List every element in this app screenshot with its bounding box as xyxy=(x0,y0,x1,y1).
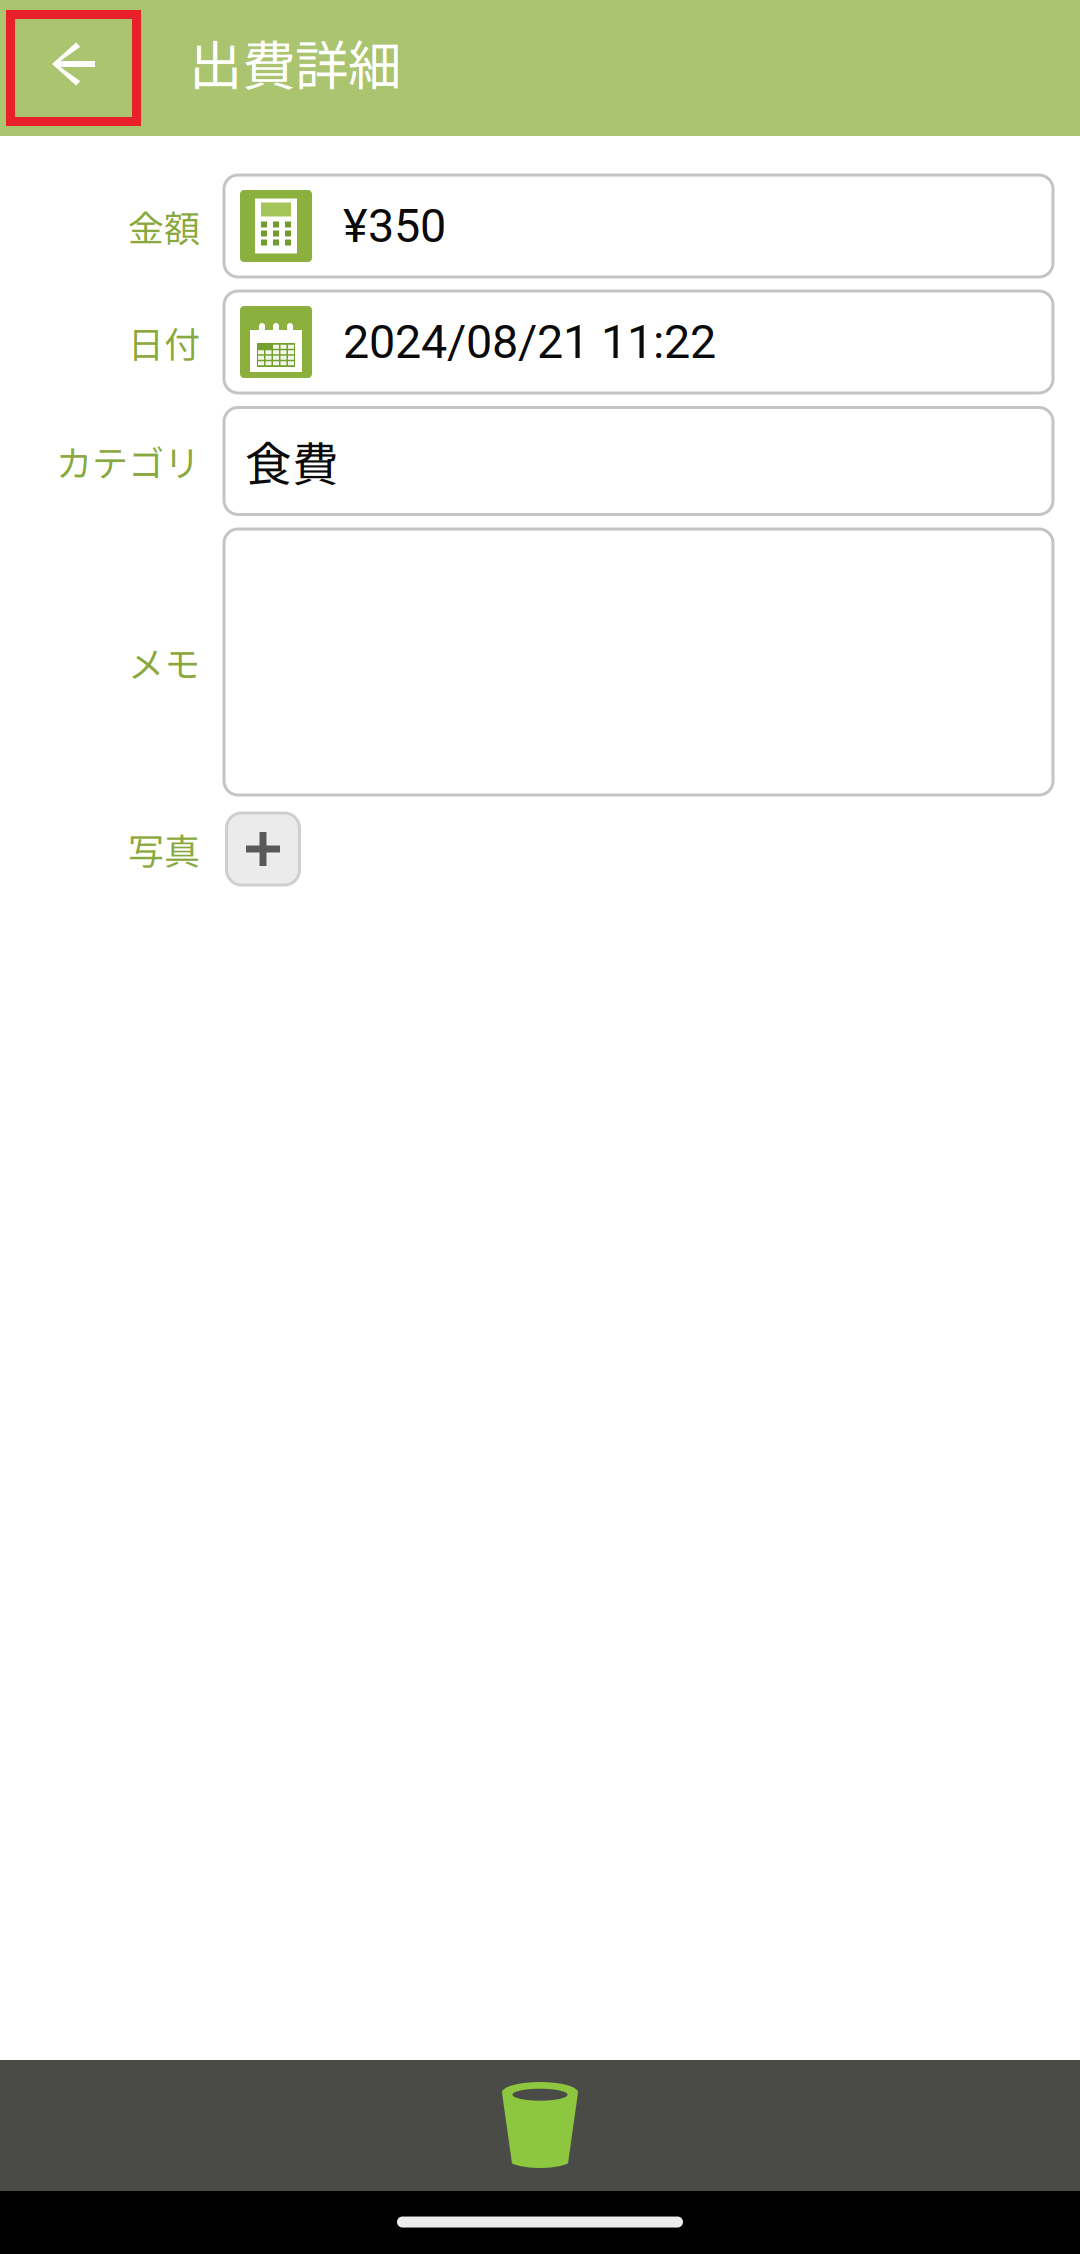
button[interactable]: 写真を追加 xyxy=(226,813,299,885)
staticText: 食費 xyxy=(245,427,339,495)
staticText: メモ xyxy=(128,636,200,688)
staticText: 2024/08/21 11:22 xyxy=(343,315,716,369)
staticText: 日付 xyxy=(128,316,200,368)
button[interactable]: 2024/08/21 11:22 xyxy=(224,291,1053,393)
staticText: ¥350 xyxy=(343,199,446,253)
staticText: カテゴリ xyxy=(56,435,200,487)
staticText: 金額 xyxy=(128,200,200,252)
button[interactable]: ¥350 xyxy=(224,175,1053,277)
staticText: 出費詳細 xyxy=(189,23,401,101)
button[interactable]: メモ xyxy=(224,529,1053,795)
button[interactable]: 食費 xyxy=(224,407,1053,514)
button[interactable]: 削除 xyxy=(0,2060,1080,2191)
button[interactable]: 戻る xyxy=(6,9,141,126)
staticText: 写真 xyxy=(128,823,200,875)
